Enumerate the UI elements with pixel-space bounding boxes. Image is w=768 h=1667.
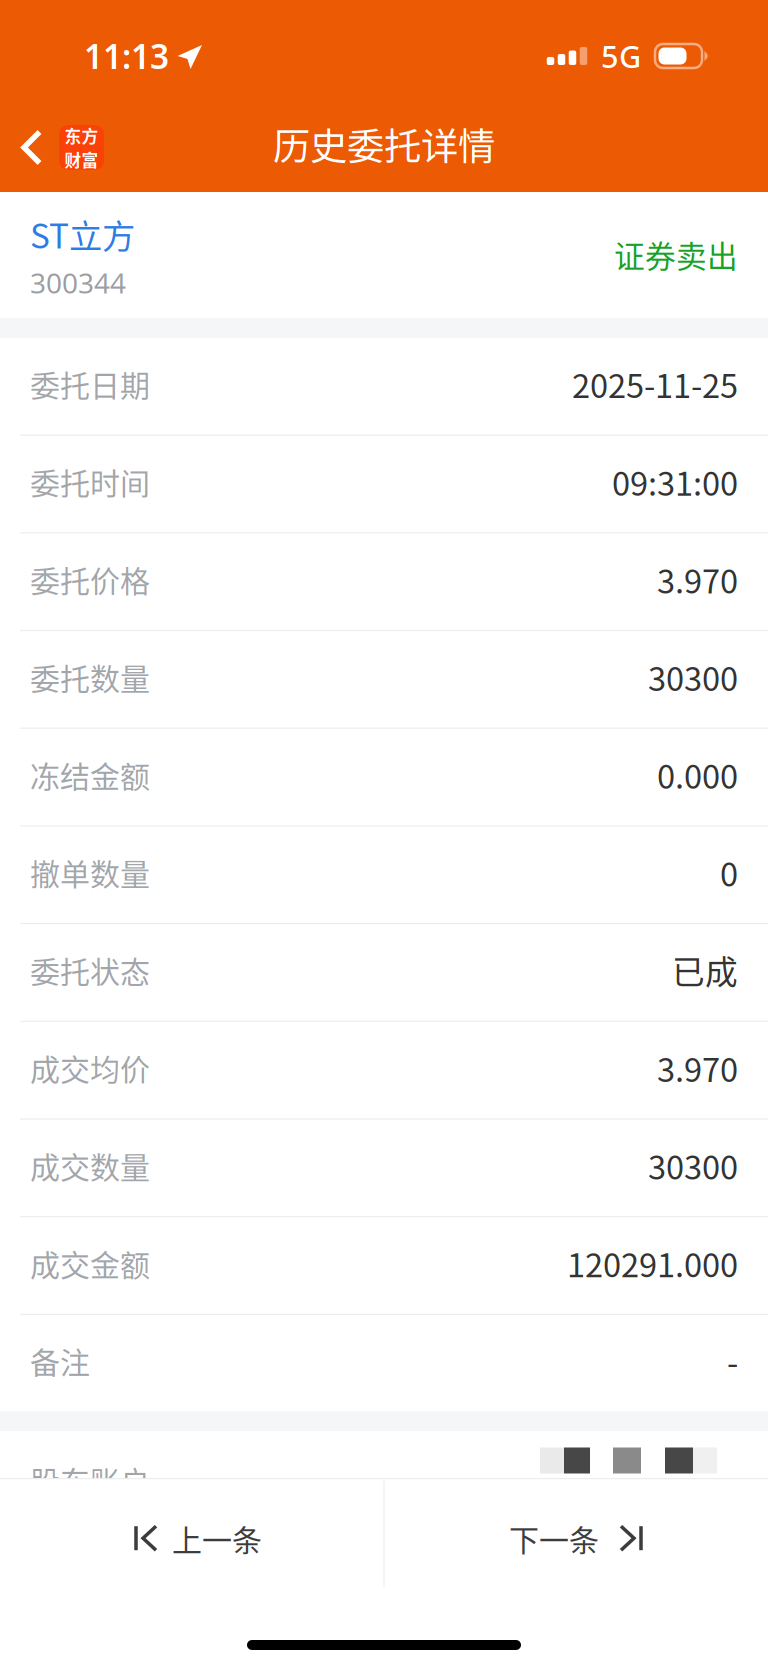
staticText: 09:31:00 [612, 458, 738, 505]
staticText: 财富 [64, 147, 98, 172]
staticText: 冻结金额 [30, 753, 150, 796]
staticText: 下一条 [509, 1516, 599, 1560]
staticText: 委托时间 [30, 460, 150, 503]
staticText: 0 [720, 849, 738, 896]
staticText: 历史委托详情 [273, 117, 495, 171]
staticText: 委托状态 [30, 948, 150, 992]
staticText: 股东账户 [30, 1458, 150, 1502]
staticText: - [727, 1337, 738, 1384]
staticText: 30300 [648, 1142, 738, 1189]
button[interactable]: 上一条 [0, 1479, 384, 1597]
staticText: 300344 [30, 264, 126, 301]
staticText: 委托日期 [30, 362, 150, 405]
staticText: 已成 [672, 946, 738, 994]
staticText: 11:13 [84, 34, 169, 78]
staticText: 证券卖出 [614, 232, 738, 277]
staticText: 3.970 [657, 1044, 738, 1091]
staticText: 备注 [30, 1339, 90, 1382]
staticText: 成交数量 [30, 1144, 150, 1187]
staticText: 30300 [648, 653, 738, 700]
staticText: 2025-11-25 [572, 360, 738, 407]
staticText: 3.970 [657, 555, 738, 603]
button[interactable]: 返回 东方财富 [0, 96, 118, 192]
staticText: 0.000 [657, 751, 738, 798]
button[interactable]: 下一条 [384, 1479, 768, 1597]
staticText: 上一条 [172, 1516, 262, 1560]
staticText: 东方 [64, 123, 98, 147]
staticText: 5G [601, 36, 641, 76]
staticText: 120291.000 [567, 1239, 738, 1287]
staticText: 委托价格 [30, 557, 150, 601]
staticText: 撤单数量 [30, 850, 150, 894]
staticText: 委托数量 [30, 655, 150, 698]
staticText: 成交均价 [30, 1046, 150, 1089]
staticText: 成交金额 [30, 1241, 150, 1285]
staticText: ST立方 [30, 210, 135, 258]
